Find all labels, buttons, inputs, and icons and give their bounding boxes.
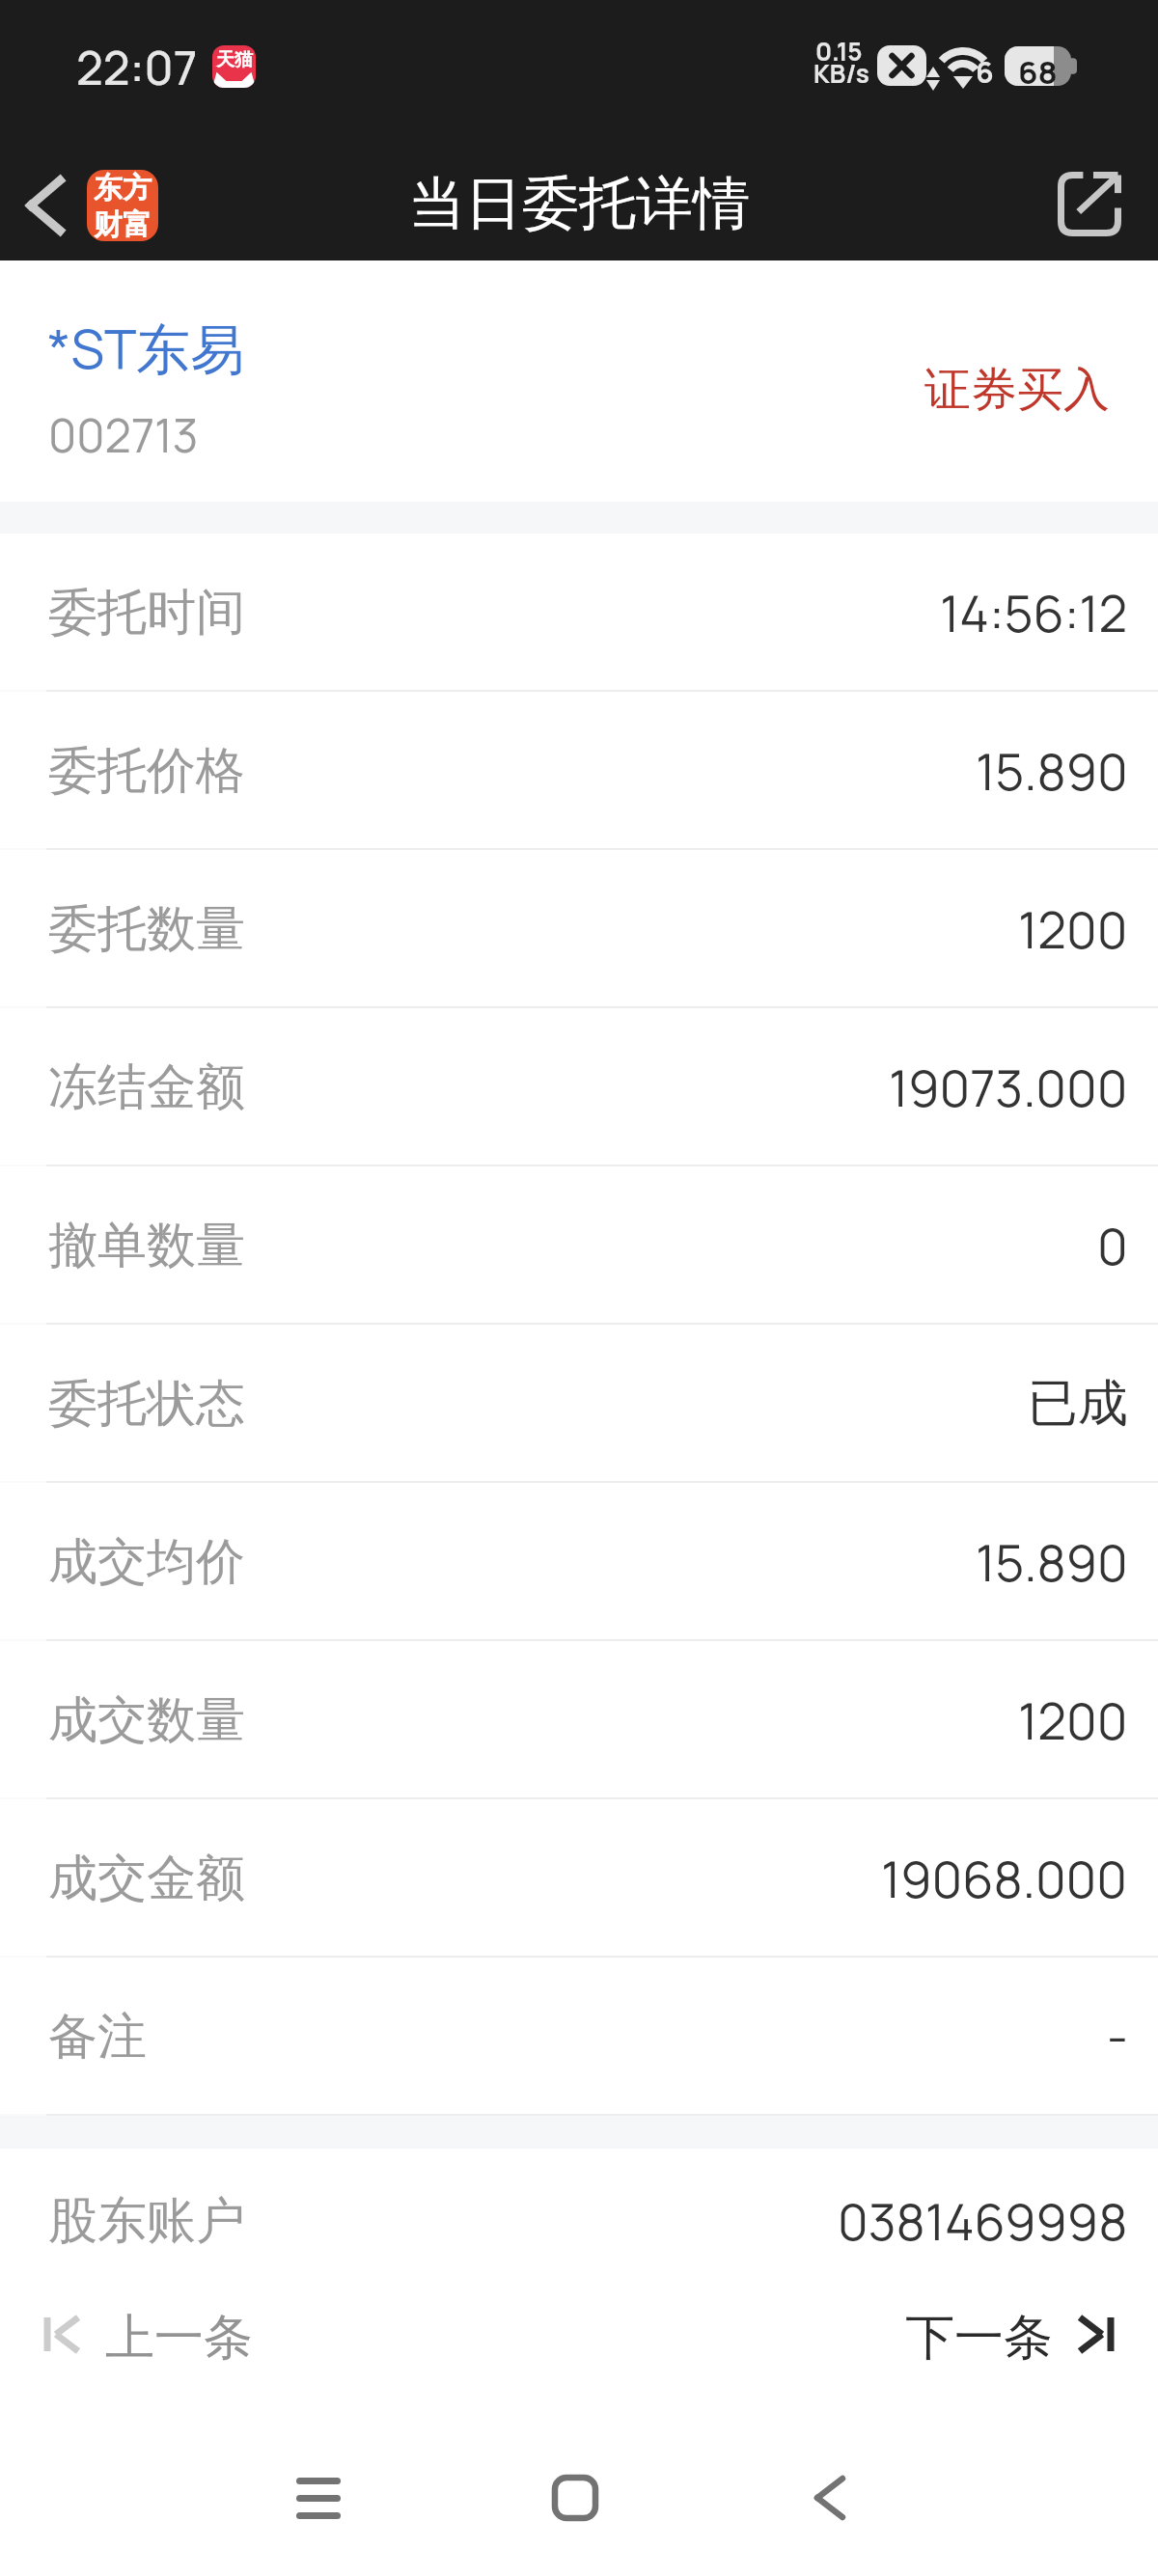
staticText: 下一条 xyxy=(905,2307,1053,2369)
staticText: 委托状态 xyxy=(48,1373,245,1435)
staticText: 上一条 xyxy=(105,2307,253,2369)
staticText: 15.890 xyxy=(976,1528,1128,1597)
staticText: 15.890 xyxy=(976,737,1128,806)
staticText: 22:07 xyxy=(76,36,198,99)
staticText: - xyxy=(1107,2003,1128,2071)
button[interactable]: Recent apps xyxy=(251,2457,386,2576)
staticText: 冻结金额 xyxy=(48,1056,245,1118)
staticText: 财富 xyxy=(94,206,152,241)
staticText: 6 xyxy=(976,52,994,92)
staticText: 0.15 xyxy=(815,34,863,69)
staticText: 委托时间 xyxy=(48,582,245,644)
button[interactable]: 委托价格 xyxy=(0,692,1158,850)
button[interactable]: Back xyxy=(0,125,89,260)
staticText: 委托价格 xyxy=(48,740,245,802)
staticText: 68 xyxy=(1018,50,1058,94)
button[interactable]: 下一条 xyxy=(868,2293,1158,2457)
button[interactable]: 委托时间 xyxy=(0,534,1158,692)
staticText: KB/s xyxy=(813,56,869,91)
staticText: 19068.000 xyxy=(881,1845,1128,1913)
staticText: 撤单数量 xyxy=(48,1215,245,1276)
staticText: 1200 xyxy=(1018,895,1128,964)
staticText: 已成 xyxy=(1028,1372,1128,1436)
button[interactable]: 股东账户 xyxy=(0,2149,1158,2293)
button[interactable]: 成交均价 xyxy=(0,1483,1158,1641)
button[interactable]: Back xyxy=(772,2457,907,2576)
staticText: 天猫 xyxy=(216,48,253,71)
button[interactable]: Share xyxy=(1023,125,1158,260)
staticText: 1200 xyxy=(1018,1686,1128,1755)
staticText: 0381469998 xyxy=(838,2187,1128,2256)
staticText: 委托数量 xyxy=(48,898,245,960)
button[interactable]: 成交金额 xyxy=(0,1799,1158,1958)
staticText: 证券买入 xyxy=(924,361,1110,419)
button[interactable]: 撤单数量 xyxy=(0,1166,1158,1325)
staticText: 成交数量 xyxy=(48,1689,245,1751)
staticText: *ST东易 xyxy=(47,311,245,384)
button[interactable]: 委托数量 xyxy=(0,850,1158,1008)
button[interactable]: 委托状态 xyxy=(0,1325,1158,1483)
button[interactable]: East Money logo xyxy=(87,170,158,241)
button[interactable]: Home xyxy=(508,2457,643,2576)
staticText: 0 xyxy=(1097,1212,1128,1280)
staticText: 东方 xyxy=(94,170,152,206)
staticText: 002713 xyxy=(48,403,199,467)
staticText: 成交均价 xyxy=(48,1531,245,1593)
button[interactable]: 上一条 xyxy=(0,2293,289,2457)
staticText: 股东账户 xyxy=(48,2190,245,2252)
button[interactable]: 成交数量 xyxy=(0,1641,1158,1799)
button[interactable]: 冻结金额 xyxy=(0,1008,1158,1166)
staticText: 备注 xyxy=(48,2006,147,2068)
button[interactable]: 备注 xyxy=(0,1958,1158,2116)
staticText: 成交金额 xyxy=(48,1848,245,1909)
staticText: 19073.000 xyxy=(889,1054,1128,1122)
staticText: 14:56:12 xyxy=(940,579,1128,647)
staticText: 当日委托详情 xyxy=(408,168,750,239)
